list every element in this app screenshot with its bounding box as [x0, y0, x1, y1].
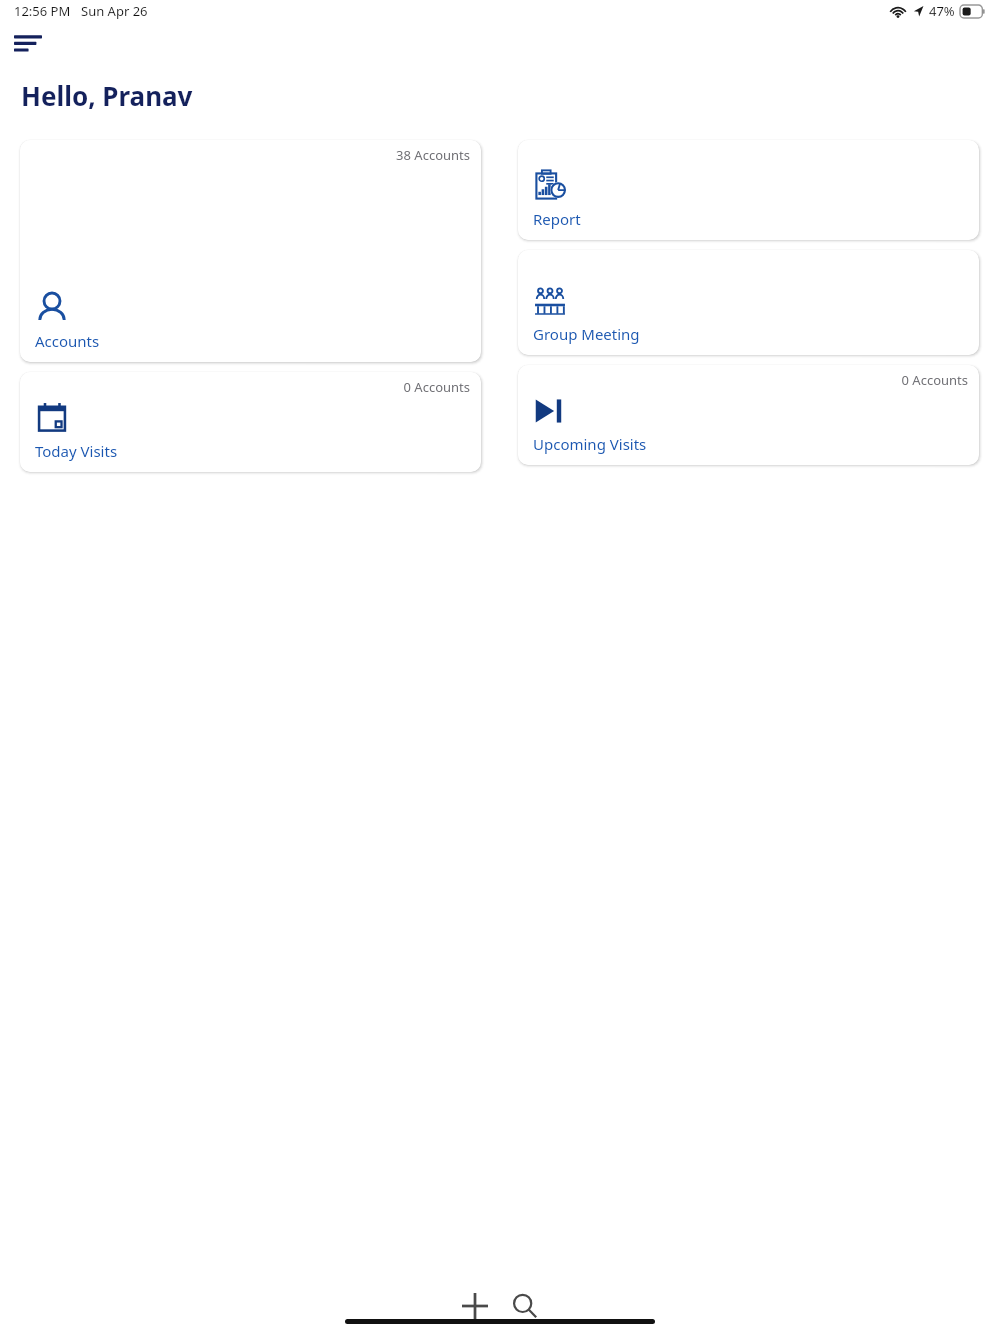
- staticText: Accounts: [35, 331, 100, 351]
- button[interactable]: 38 Accounts: [20, 140, 481, 362]
- staticText: Sun Apr 26: [81, 2, 148, 20]
- staticText: 0 Accounts: [403, 378, 470, 396]
- staticText: Upcoming Visits: [533, 434, 647, 454]
- staticText: Group Meeting: [533, 324, 640, 344]
- staticText: Report: [533, 209, 581, 229]
- button[interactable]: Add: [453, 1284, 497, 1328]
- button[interactable]: Menu: [14, 28, 54, 56]
- staticText: Today Visits: [35, 441, 118, 461]
- staticText: 47%: [929, 2, 955, 20]
- staticText: Hello, Pranav: [21, 78, 193, 113]
- button[interactable]: 0 Accounts: [518, 365, 979, 465]
- button[interactable]: 0 Accounts: [20, 372, 481, 472]
- staticText: 0 Accounts: [901, 371, 968, 389]
- button[interactable]: Report: [518, 140, 979, 240]
- button[interactable]: Group Meeting: [518, 250, 979, 355]
- staticText: 38 Accounts: [396, 146, 470, 164]
- staticText: 12:56 PM: [14, 2, 71, 20]
- button[interactable]: Search: [503, 1284, 547, 1328]
